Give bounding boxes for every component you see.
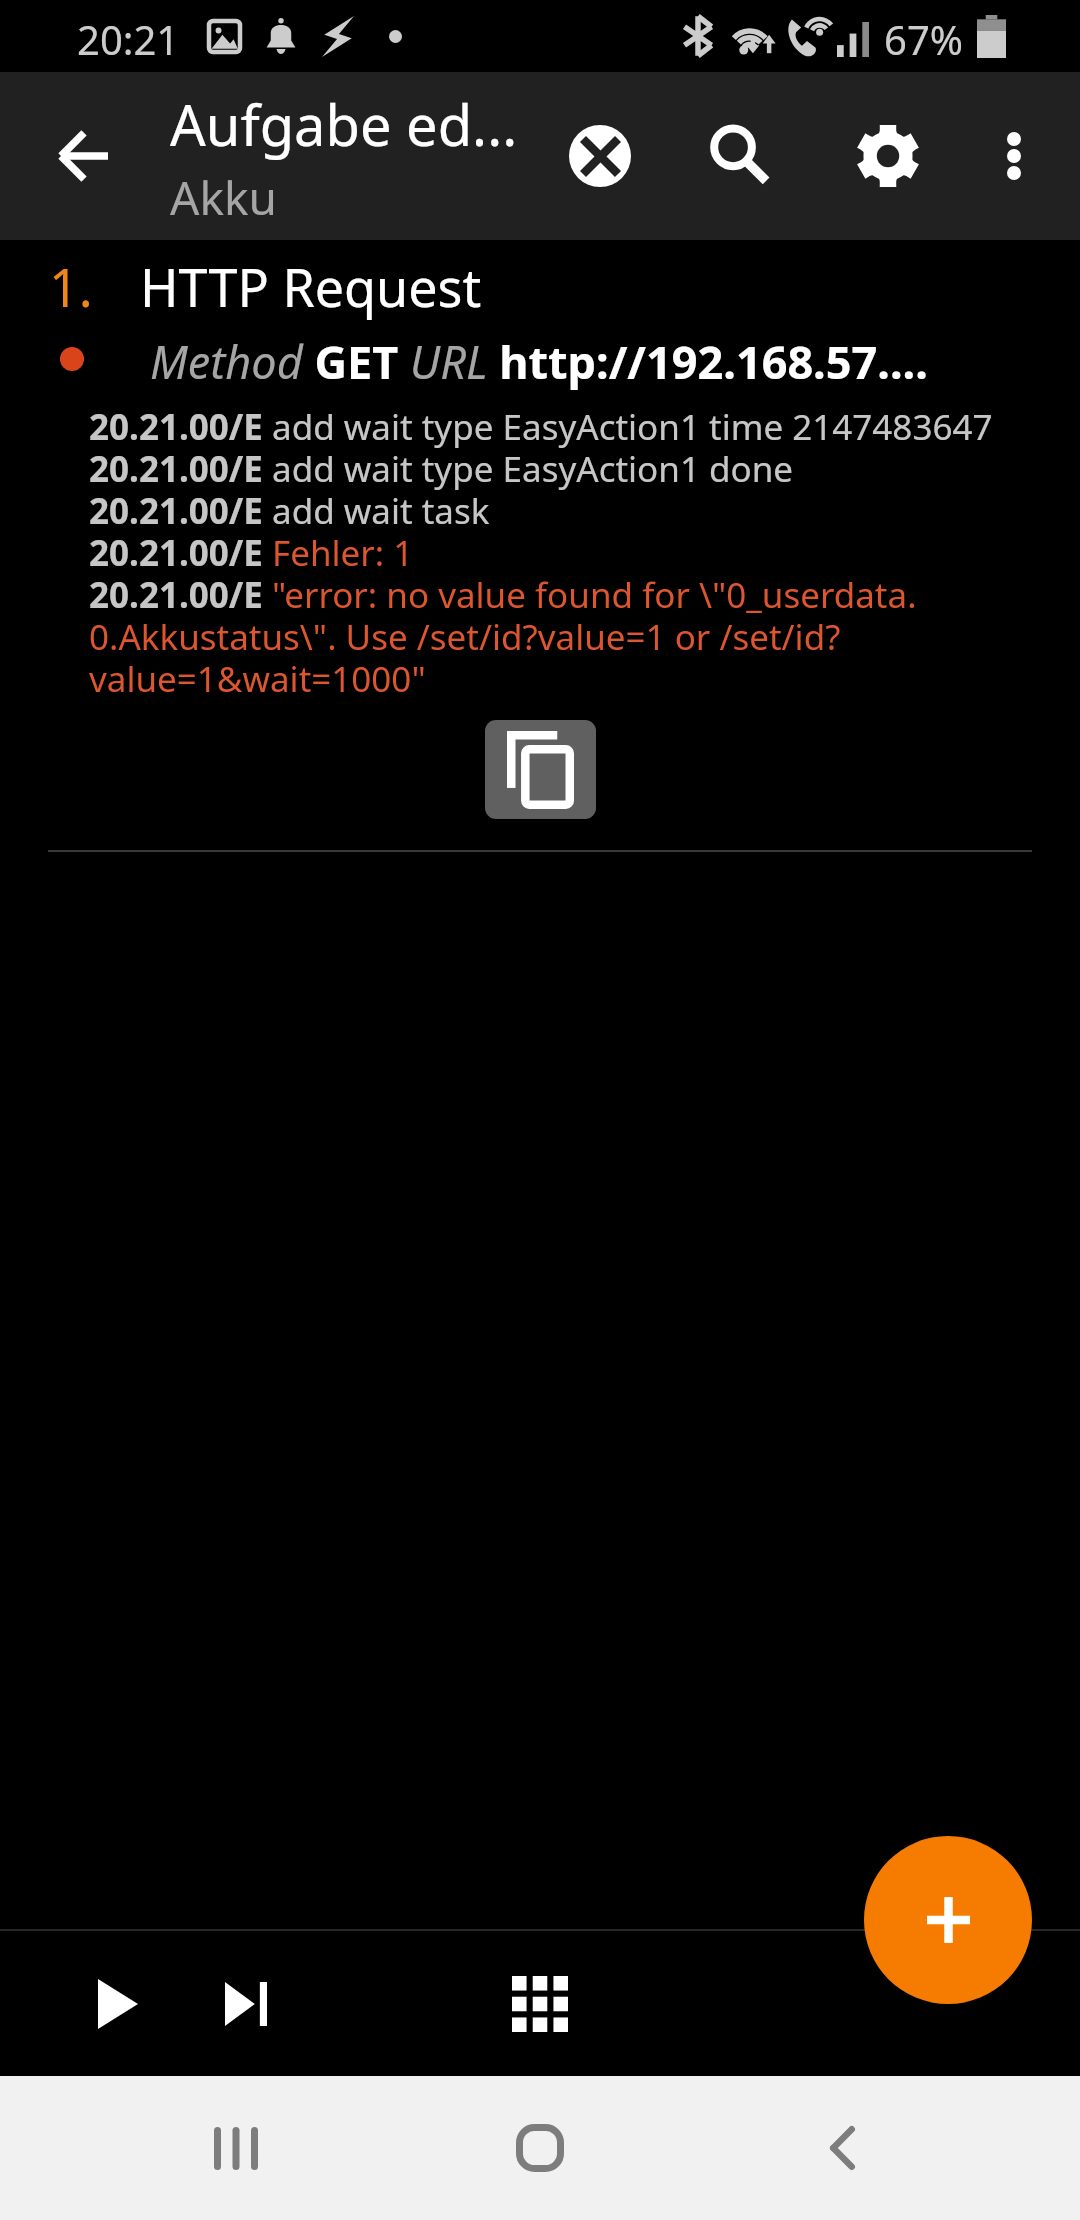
button[interactable]: Back bbox=[782, 2088, 902, 2208]
staticText: HTTP Request bbox=[140, 251, 482, 322]
staticText: Akku bbox=[170, 166, 277, 229]
button[interactable]: Add bbox=[864, 1836, 1032, 2004]
button[interactable]: Play bbox=[71, 1957, 165, 2051]
button[interactable]: Stop bbox=[553, 109, 647, 203]
staticText: 67% bbox=[884, 12, 963, 66]
staticText: Method GET URL http://192.168.57.... bbox=[150, 331, 928, 392]
button[interactable]: Back bbox=[37, 109, 131, 203]
button[interactable]: Copy bbox=[485, 720, 596, 819]
button[interactable]: Apps bbox=[493, 1957, 587, 2051]
button[interactable]: More options bbox=[967, 109, 1061, 203]
button[interactable]: Next bbox=[199, 1957, 293, 2051]
staticText: 20:21 bbox=[77, 12, 180, 66]
button[interactable]: Recent apps bbox=[176, 2088, 296, 2208]
button[interactable]: Search bbox=[693, 109, 787, 203]
button[interactable]: Home bbox=[480, 2088, 600, 2208]
button[interactable]: Settings bbox=[841, 109, 935, 203]
staticText: Aufgabe ed... bbox=[170, 86, 518, 162]
staticText: 1. bbox=[49, 251, 93, 322]
staticText: 20.21.00/E add wait type EasyAction1 tim… bbox=[89, 403, 1001, 702]
